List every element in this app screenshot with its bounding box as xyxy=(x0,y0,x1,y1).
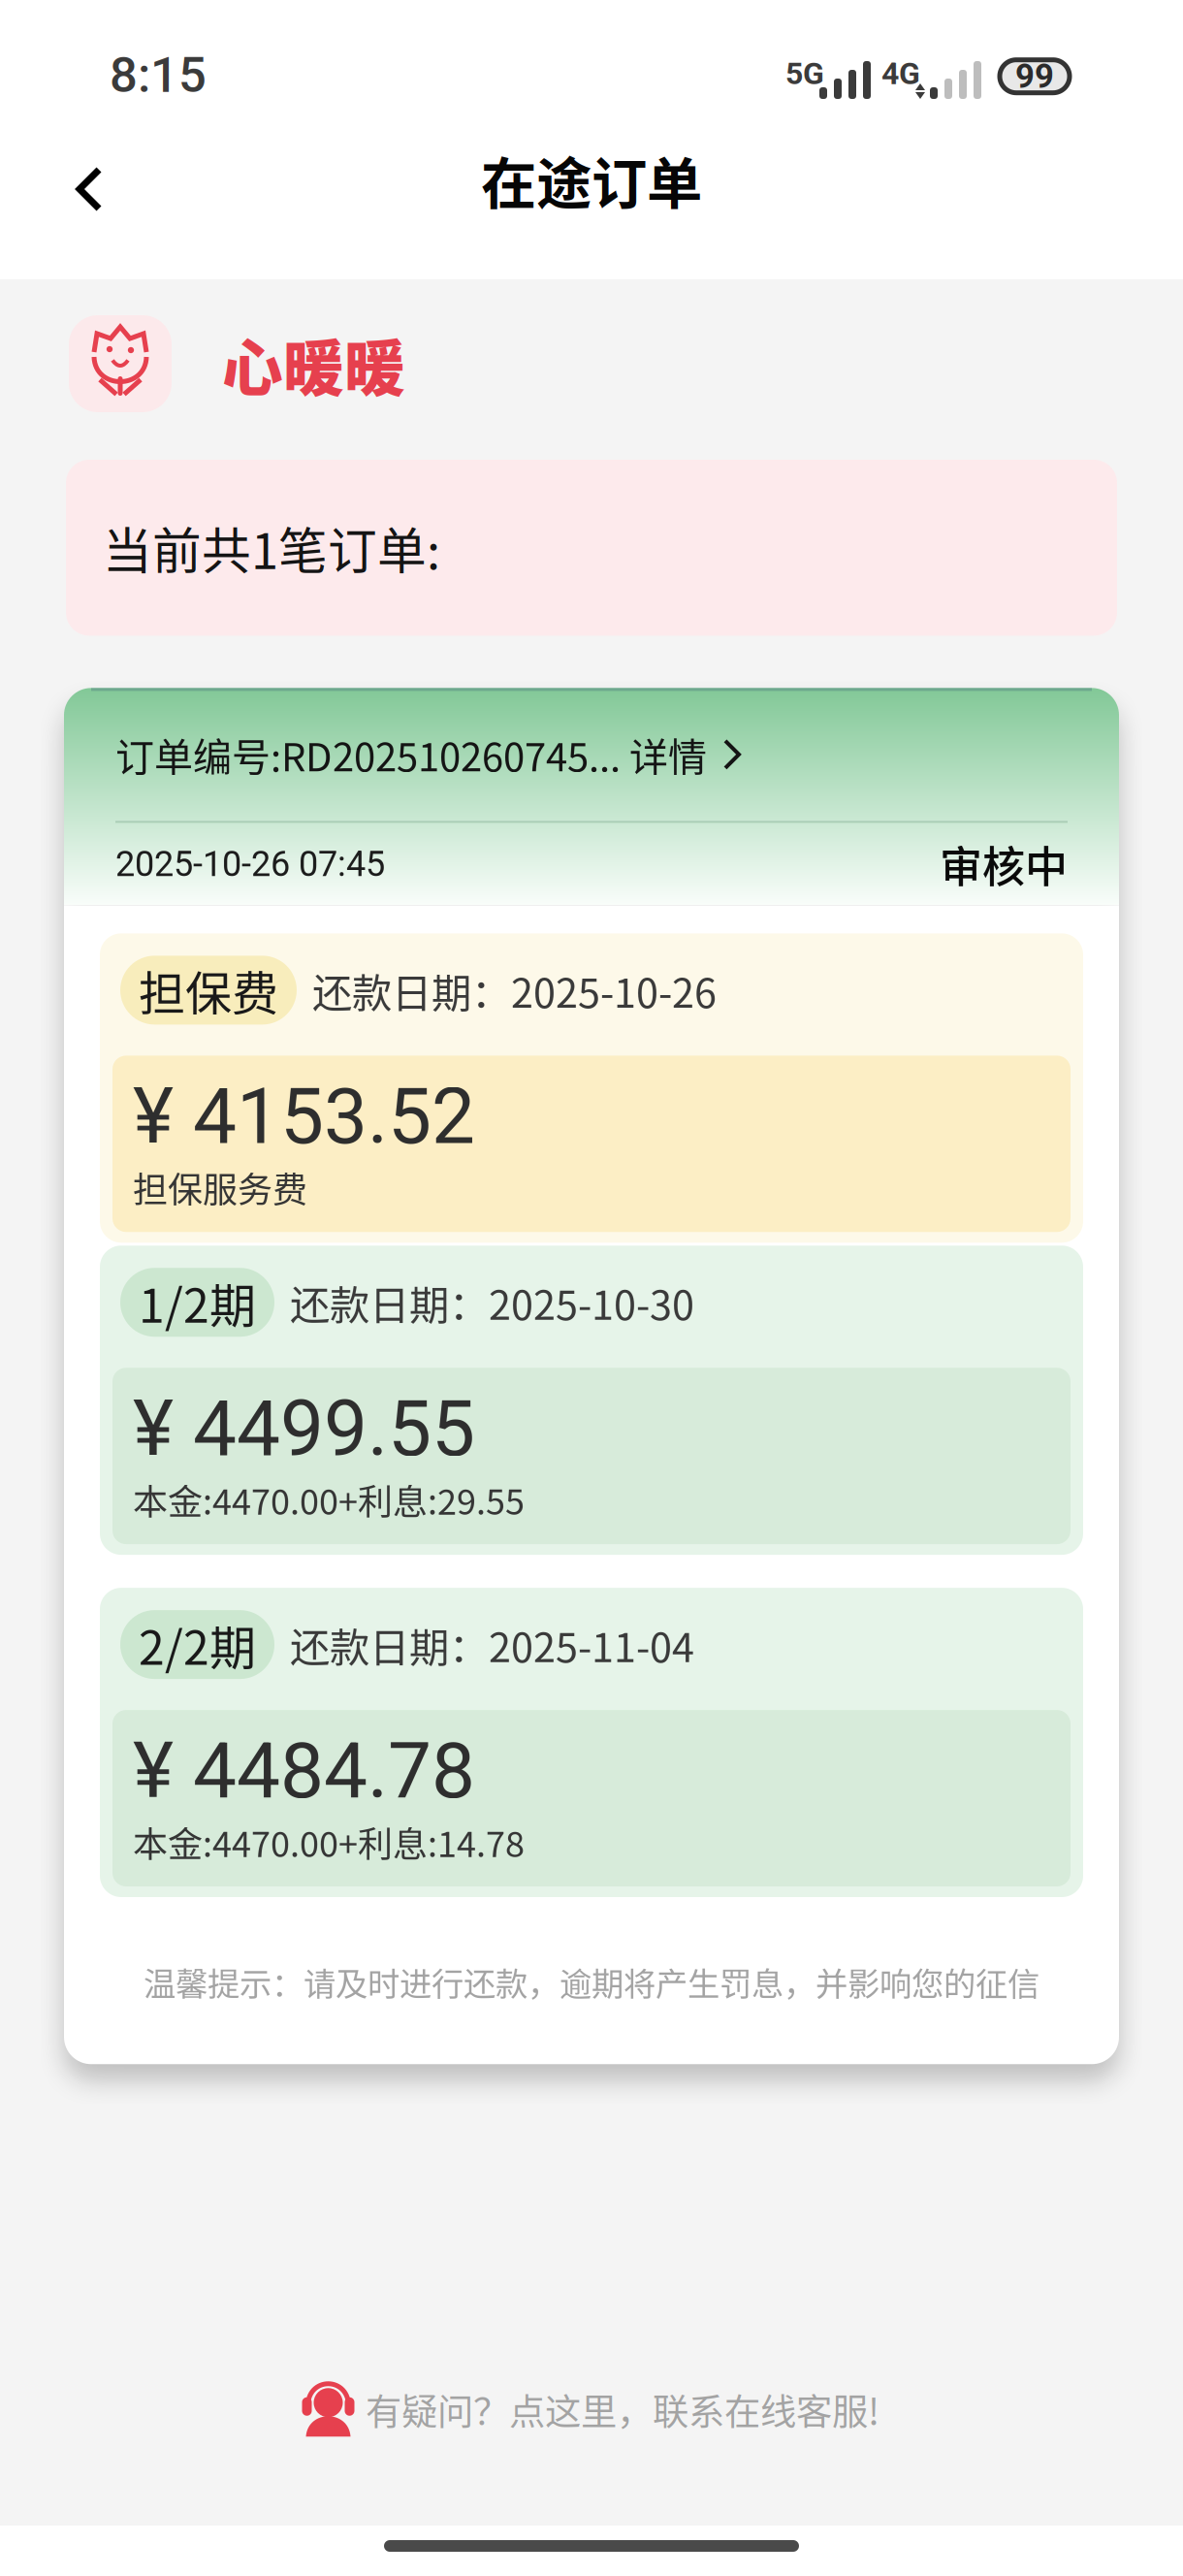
staticText: ¥ 4484.78 xyxy=(133,1726,475,1816)
staticText: 本金:4470.00+利息:14.78 xyxy=(133,1816,525,1867)
staticText: 还款日期：2025-10-30 xyxy=(290,1273,694,1331)
staticText: 在途订单 xyxy=(481,139,702,220)
staticText: 还款日期：2025-10-26 xyxy=(312,961,717,1019)
staticText: 订单编号:RD202510260745... 详情 xyxy=(115,726,707,782)
staticText: 2025-10-26 07:45 xyxy=(115,844,385,885)
staticText: 5G xyxy=(785,55,824,92)
staticText: 当前共1笔订单: xyxy=(103,512,440,583)
staticText: 99 xyxy=(1015,57,1054,96)
staticText: 8:15 xyxy=(110,46,207,104)
staticText: 1/2期 xyxy=(139,1269,256,1336)
staticText: ¥ 4499.55 xyxy=(133,1383,475,1474)
staticText: 温馨提示：请及时进行还款，逾期将产生罚息，并影响您的征信 xyxy=(144,1958,1039,2005)
staticText: 心暖暖 xyxy=(222,320,405,408)
staticText: 还款日期：2025-11-04 xyxy=(290,1616,694,1674)
button[interactable]: 有疑问？点这里，联系在线客服! xyxy=(290,2369,893,2450)
button[interactable]: 返回 xyxy=(0,148,138,257)
staticText: 有疑问？点这里，联系在线客服! xyxy=(366,2383,879,2436)
staticText: 2/2期 xyxy=(139,1611,256,1678)
staticText: 审核中 xyxy=(940,833,1068,895)
staticText: 担保费 xyxy=(139,956,278,1024)
button[interactable]: 订单编号:RD202510260745... 详情 xyxy=(64,688,1119,821)
staticText: ¥ 4153.52 xyxy=(133,1071,475,1162)
staticText: 担保服务费 xyxy=(133,1162,307,1213)
staticText: 本金:4470.00+利息:29.55 xyxy=(133,1474,525,1525)
staticText: 4G xyxy=(881,55,920,92)
